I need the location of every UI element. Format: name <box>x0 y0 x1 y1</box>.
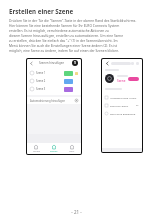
button[interactable]: Zurück <box>105 61 109 65</box>
staticText: wenn eine Bewegung <box>110 112 136 115</box>
button[interactable]: Aufgezeichnete Aktion <box>102 93 142 101</box>
staticText: Szene 3 <box>36 87 46 91</box>
button[interactable]: Szene 3 <box>27 85 81 93</box>
button[interactable]: Automatisierung hinzufügen <box>27 97 81 104</box>
button[interactable]: Mehr <box>63 143 81 154</box>
staticText: Automatisierung hinzufügen <box>30 99 66 103</box>
staticText: Mehr <box>69 150 75 153</box>
button[interactable]: Szene 1 <box>27 69 81 77</box>
button[interactable]: Szenen <box>45 143 63 154</box>
button[interactable]: wenn eine Bewegung <box>102 109 142 117</box>
staticText: 1 <box>74 61 76 65</box>
staticText: Aufgezeichnete Aktion <box>110 96 137 99</box>
staticText: Zeitliche Latenz <box>110 104 129 107</box>
staticText: möglich, eine Szene zu ändern, indem Sie… <box>9 48 143 52</box>
staticText: Szene 2 <box>36 79 46 83</box>
staticText: Szenen hinzufügen <box>39 61 65 65</box>
staticText: Szenen <box>50 150 58 153</box>
button[interactable]: Zeitliche Latenz <box>102 101 142 109</box>
staticText: Drücken Sie in der Tür die "Szenen"-Tast… <box>9 18 143 22</box>
button[interactable]: Szene 2 <box>27 77 81 85</box>
staticText: Hier können Sie eine bestehende Szenen f… <box>9 23 143 27</box>
staticText: - 21 - <box>71 209 82 215</box>
staticText: Szene 1 <box>36 71 46 75</box>
staticText: zu erstellen, drücken Sie einfach das "+… <box>9 38 143 42</box>
staticText: 5s <box>136 104 139 107</box>
staticText: erstellen. Es ist möglich, verschiedene … <box>9 28 143 32</box>
button[interactable]: Szene aktivieren <box>128 77 139 81</box>
staticText: Erstellen einer Szene <box>9 7 74 15</box>
staticText: Menü können Sie auch die Einstellungen e… <box>9 43 143 47</box>
staticText: Szene <box>117 79 126 83</box>
button[interactable]: Schritt 1 <box>72 60 78 66</box>
staticText: diesem Szenen hinzuzufügen, erstellen zu… <box>9 33 143 37</box>
button[interactable]: Geräte <box>27 143 45 154</box>
staticText: Geräte <box>33 150 40 153</box>
